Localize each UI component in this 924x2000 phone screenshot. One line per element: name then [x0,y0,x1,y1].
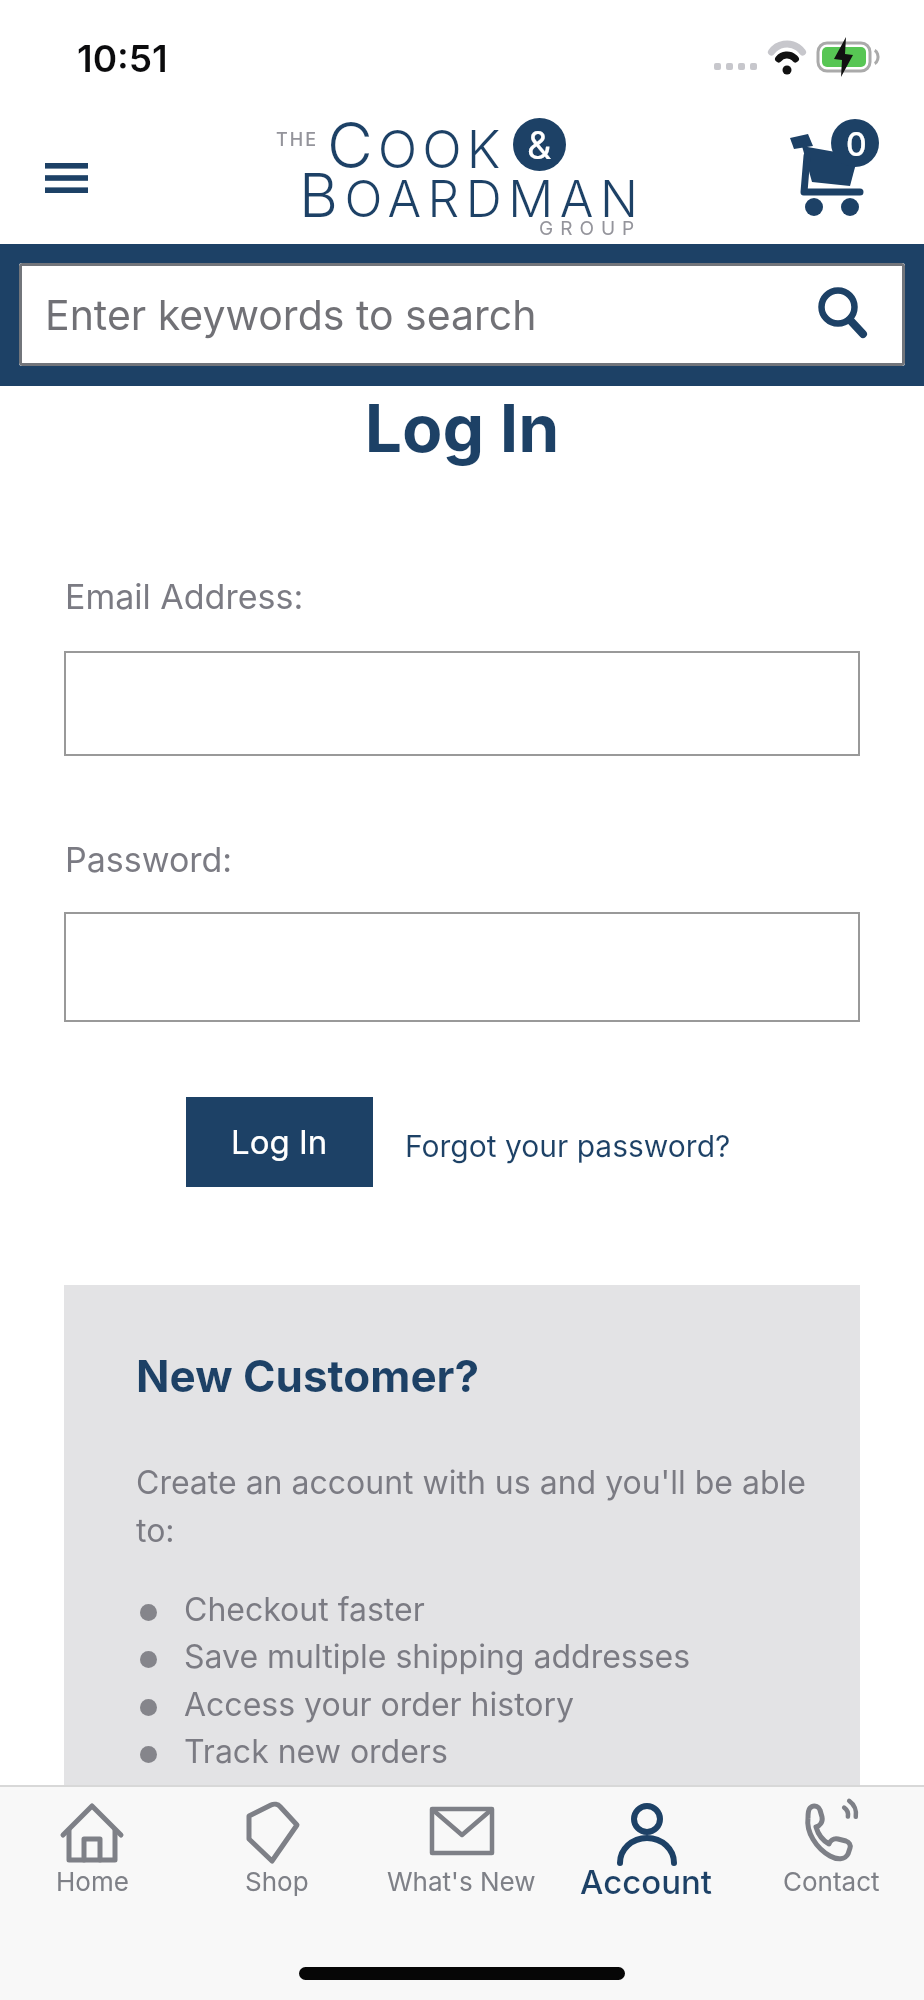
staticText: Home [56,1866,129,1897]
button[interactable]: Enter keywords to search [19,263,905,366]
button[interactable] [64,912,860,1022]
staticText: Shop [245,1866,309,1897]
staticText: Checkout faster [184,1590,425,1629]
staticText: New Customer? [136,1349,480,1402]
staticText: Save multiple shipping addresses [184,1637,691,1676]
button[interactable]: Home [0,1785,184,2000]
button[interactable]: What's New [369,1785,554,2000]
staticText: Account [580,1862,713,1902]
staticText: BOARDMAN [299,159,645,232]
button[interactable]: Log In [186,1097,373,1187]
staticText: Enter keywords to search [45,290,537,340]
staticText: THE [276,129,319,151]
staticText: 0 [846,125,867,164]
staticText: Track new orders [184,1732,448,1771]
staticText: Email Address: [65,576,304,617]
button[interactable]: Contact [739,1785,924,2000]
button[interactable]: Shop [184,1785,369,2000]
staticText: Contact [783,1866,880,1897]
staticText: Access your order history [184,1685,575,1724]
button[interactable]: Forgot your password? [405,1128,731,1164]
button[interactable] [64,651,860,756]
button[interactable]: 0 [780,108,885,223]
staticText: COOK [327,107,506,183]
staticText: Log In [231,1122,328,1162]
button[interactable] [45,163,88,193]
staticText: & [527,122,552,168]
staticText: 10:51 [77,36,168,81]
staticText: Log In [0,388,924,468]
staticText: Password: [65,839,233,880]
staticText: GROUP [539,217,642,240]
staticText: What's New [387,1866,536,1897]
button[interactable]: Account [554,1785,739,2000]
staticText: Create an account with us and you'll be … [136,1463,806,1502]
staticText: to: [136,1511,175,1550]
